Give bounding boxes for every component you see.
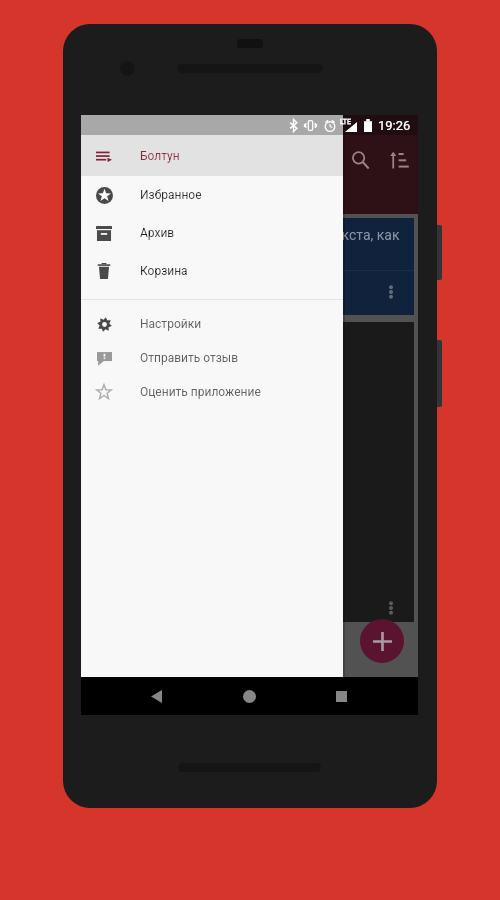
- button[interactable]: Отправить отзыв: [81, 341, 343, 375]
- staticText: Отправить отзыв: [140, 351, 239, 365]
- button[interactable]: Болтун: [81, 135, 343, 176]
- button[interactable]: Add: [360, 619, 404, 663]
- button[interactable]: More options: [384, 285, 398, 299]
- button[interactable]: Search: [342, 142, 378, 178]
- staticText: Болтун: [140, 149, 180, 163]
- button[interactable]: Корзина: [81, 252, 343, 290]
- staticText: Настройки: [140, 317, 202, 331]
- button[interactable]: Архив: [81, 214, 343, 252]
- staticText: Архив: [140, 226, 175, 240]
- button[interactable]: Home: [232, 679, 267, 714]
- button[interactable]: Избранное: [81, 176, 343, 214]
- button[interactable]: Recents: [324, 679, 359, 714]
- button[interactable]: Оценить приложение: [81, 375, 343, 409]
- staticText: LTE: [340, 118, 351, 126]
- staticText: Избранное: [140, 188, 202, 202]
- staticText: Оценить приложение: [140, 385, 261, 399]
- staticText: Введите сюда текста, как: [232, 227, 400, 243]
- button[interactable]: Back: [139, 679, 174, 714]
- button[interactable]: Настройки: [81, 307, 343, 341]
- staticText: 19:26: [378, 118, 411, 133]
- staticText: Корзина: [140, 264, 188, 278]
- button[interactable]: Sort: [381, 142, 417, 178]
- button[interactable]: More options: [384, 601, 398, 615]
- button[interactable]: More options: [84, 322, 414, 622]
- button[interactable]: Введите сюда текста, как: [84, 218, 414, 315]
